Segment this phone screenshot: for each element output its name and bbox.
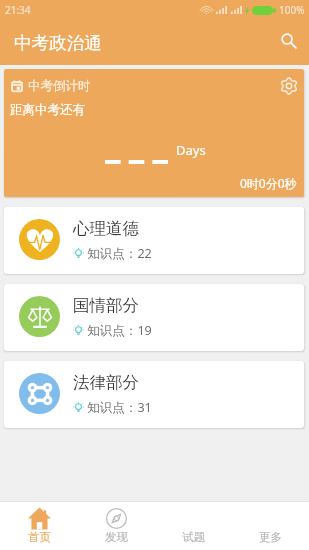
staticText: 21:34 [5, 3, 31, 17]
button[interactable]: 试题 [155, 502, 232, 550]
staticText: 心理道德 [73, 218, 139, 239]
staticText: 100% [279, 3, 305, 17]
staticText: 知识点：19 [87, 322, 152, 339]
staticText: 发现 [105, 530, 128, 544]
staticText: 中考倒计时 [28, 78, 91, 94]
staticText: 首页 [28, 530, 51, 544]
button[interactable]: 法律部分 [4, 361, 304, 428]
button[interactable]: 国情部分 [4, 284, 304, 351]
button[interactable]: 首页 [0, 502, 78, 550]
button[interactable]: Settings [276, 73, 302, 99]
button[interactable]: 心理道德 [4, 207, 304, 274]
staticText: 距离中考还有 [10, 102, 85, 118]
button[interactable]: Search [275, 27, 303, 55]
staticText: 国情部分 [73, 295, 139, 316]
staticText: 试题 [182, 530, 205, 544]
button[interactable]: 中考倒计时 [4, 69, 304, 197]
staticText: 法律部分 [73, 372, 139, 393]
staticText: 0时0分0秒 [240, 175, 297, 191]
button[interactable]: 更多 [232, 502, 309, 550]
button[interactable]: 发现 [78, 502, 155, 550]
staticText: 知识点：22 [87, 245, 152, 262]
staticText: Days [176, 141, 206, 159]
staticText: 更多 [259, 530, 282, 544]
staticText: 知识点：31 [87, 399, 152, 416]
staticText: 中考政治通 [14, 32, 102, 54]
